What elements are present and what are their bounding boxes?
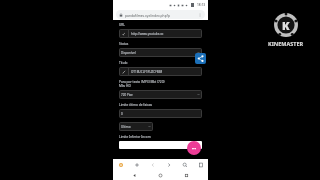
button[interactable]: Disponível [119,48,202,57]
staticText: http://www.youtube.co [131,32,164,36]
staticText: Disponível [121,51,136,55]
button[interactable]: Ultimo [119,122,153,131]
staticText: Mkv HD [119,84,131,88]
staticText: pandafilmes.xyz/index.php?p [125,13,171,17]
staticText: Status [119,42,129,46]
staticText: 0 [121,112,123,116]
button[interactable]: Home [156,171,165,180]
staticText: ••• [192,146,196,151]
button[interactable]: Home [116,160,125,169]
button[interactable]: http://www.youtube.co [119,29,202,38]
staticText: URL [119,23,125,27]
button[interactable]: New tab [132,160,141,169]
staticText: KINEMASTER [268,40,304,47]
button[interactable]: Back [148,160,157,169]
staticText: Ultimo [121,125,131,129]
staticText: Titulo [119,61,128,65]
button[interactable]: Search [180,160,189,169]
staticText: K [282,18,290,33]
button[interactable]: pandafilmes.xyz/index.php?p [116,10,205,19]
button[interactable]: OT1BUCLF1RUZCFMM [119,67,202,76]
button[interactable]: More options [197,12,202,17]
staticText: Para por texto (MP3) Mkt (720) [119,80,165,84]
button[interactable]: Action [187,141,201,155]
button[interactable]: Back [130,171,139,180]
staticText: 18:13 [197,3,206,7]
button[interactable]: Share [195,53,206,64]
button[interactable]: Bookmarks [196,160,205,169]
button[interactable]: 0 [119,109,202,118]
button[interactable]: Forward [164,160,173,169]
button[interactable] [119,141,202,149]
staticText: 720 Pixe [121,93,133,97]
button[interactable]: Recents [182,171,191,180]
button[interactable]: 720 Pixe [119,90,202,99]
staticText: Limite ótimo de faixas [119,103,153,107]
staticText: Limite Inferior Incom [119,135,151,139]
staticText: OT1BUCLF1RUZCFMM [131,70,163,74]
